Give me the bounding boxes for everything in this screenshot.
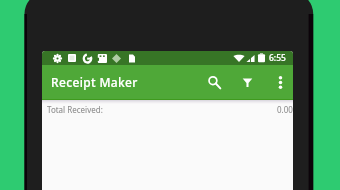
staticText: Receipt Maker xyxy=(51,74,138,90)
button[interactable]: More options xyxy=(266,65,293,99)
staticText: 6:55 xyxy=(269,52,286,64)
staticText: Total Received: xyxy=(47,104,103,115)
staticText: 0.00 xyxy=(277,104,293,115)
button[interactable]: Search xyxy=(200,65,228,99)
button[interactable]: Total Received: xyxy=(42,100,293,115)
button[interactable]: Filter xyxy=(233,65,261,99)
